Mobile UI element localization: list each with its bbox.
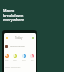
staticText: Grilled salmon — [10, 45, 25, 48]
staticText: Macro breakdown everywhere — [3, 8, 25, 22]
staticText: carb — [13, 59, 17, 61]
staticText: Daily summary — [5, 66, 21, 69]
staticText: Today — [15, 36, 23, 40]
staticText: kcal — [5, 59, 9, 61]
staticText: prot — [22, 59, 26, 61]
staticText: fat — [31, 59, 34, 61]
